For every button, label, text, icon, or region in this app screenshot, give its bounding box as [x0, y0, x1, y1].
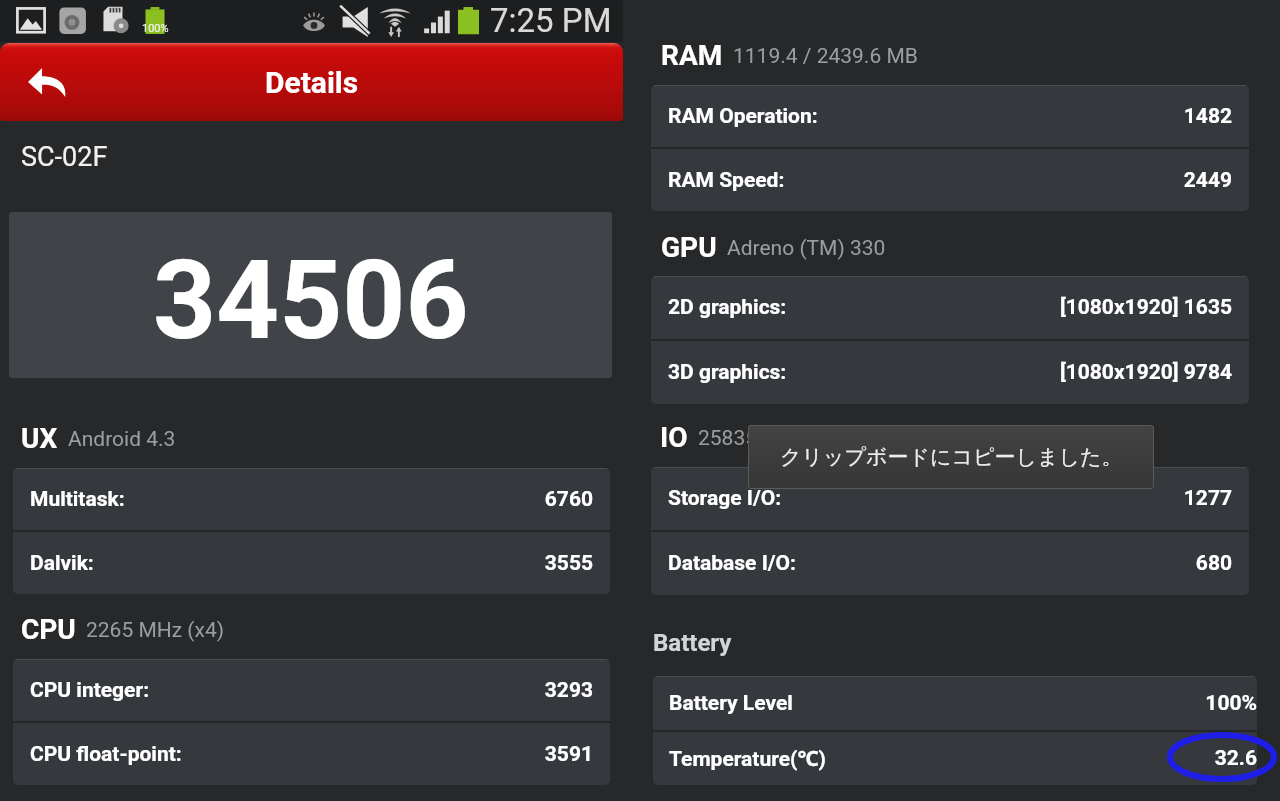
staticText: UX	[21, 422, 58, 455]
staticText: [1080x1920] 9784	[795, 360, 1232, 385]
staticText: Multitask:	[30, 487, 125, 512]
staticText: クリップボードにコピーしました。	[780, 444, 1123, 470]
staticText: Android 4.3	[68, 427, 176, 452]
staticText: RAM Operation:	[668, 104, 818, 129]
staticText: 34506	[153, 236, 469, 365]
staticText: 1277	[790, 486, 1232, 511]
button[interactable]: 2D graphics:	[651, 276, 1249, 339]
button[interactable]: Back	[14, 55, 80, 109]
button[interactable]: Temperature(℃)	[653, 732, 1257, 785]
staticText: Storage I/O:	[668, 486, 782, 511]
button[interactable]: RAM Speed:	[651, 149, 1249, 211]
button[interactable]: CPU float-point:	[13, 723, 610, 785]
staticText: 3555	[102, 551, 593, 576]
staticText: GPU	[661, 231, 717, 264]
staticText: Battery	[653, 629, 732, 657]
staticText: 6760	[133, 487, 593, 512]
staticText: 1119.4 / 2439.6 MB	[733, 44, 918, 69]
button[interactable]: Database I/O:	[651, 532, 1249, 595]
staticText: [1080x1920] 1635	[795, 295, 1232, 320]
staticText: CPU	[21, 613, 76, 646]
button[interactable]: Storage I/O:	[651, 467, 1249, 530]
staticText: 3D graphics:	[668, 360, 787, 385]
staticText: 25835	[698, 426, 758, 451]
button[interactable]: Battery Level	[653, 676, 1257, 730]
staticText: 2449	[793, 168, 1232, 193]
staticText: SC-02F	[21, 141, 108, 173]
staticText: 2265 MHz (x4)	[86, 618, 225, 643]
button[interactable]: RAM Operation:	[651, 85, 1249, 147]
button[interactable]: Dalvik:	[13, 532, 610, 594]
button[interactable]: Multitask:	[13, 468, 610, 530]
staticText: Details	[265, 65, 359, 100]
staticText: 32.6	[834, 746, 1257, 771]
staticText: 680	[804, 551, 1232, 576]
staticText: 100%	[801, 691, 1257, 716]
staticText: Dalvik:	[30, 551, 94, 576]
staticText: RAM	[661, 39, 723, 72]
staticText: Temperature(℃)	[669, 744, 826, 773]
staticText: 100%	[142, 22, 169, 35]
staticText: RAM Speed:	[668, 168, 785, 193]
staticText: Battery Level	[669, 691, 793, 716]
staticText: CPU integer:	[30, 678, 150, 703]
staticText: 3293	[158, 678, 593, 703]
staticText: 3591	[190, 742, 593, 767]
button[interactable]: 34506	[9, 212, 612, 378]
staticText: IO	[660, 421, 688, 454]
staticText: 7:25 PM	[490, 1, 612, 40]
staticText: 2D graphics:	[668, 295, 787, 320]
staticText: CPU float-point:	[30, 742, 182, 767]
staticText: Adreno (TM) 330	[727, 236, 886, 261]
staticText: 1482	[826, 104, 1232, 129]
button[interactable]: CPU integer:	[13, 659, 610, 721]
button[interactable]: 3D graphics:	[651, 341, 1249, 404]
staticText: Database I/O:	[668, 551, 796, 576]
